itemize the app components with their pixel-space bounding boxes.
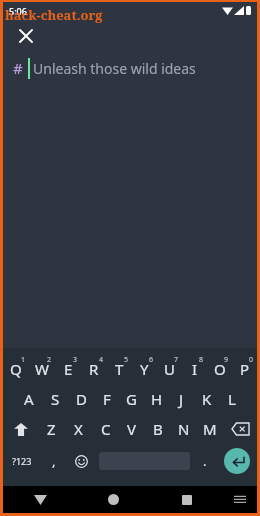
button[interactable]: Recents xyxy=(150,486,223,513)
button[interactable]: O xyxy=(207,354,232,384)
button[interactable]: Q xyxy=(3,354,29,384)
button[interactable]: U xyxy=(157,354,182,384)
staticText: G xyxy=(126,389,137,409)
button[interactable]: C xyxy=(92,414,119,444)
staticText: X xyxy=(74,419,83,439)
button[interactable]: D xyxy=(68,384,94,414)
button[interactable]: X xyxy=(65,414,92,444)
button[interactable]: P xyxy=(232,354,257,384)
button[interactable]: # xyxy=(3,53,257,83)
staticText: A xyxy=(24,389,34,409)
staticText: S xyxy=(51,389,60,409)
staticText: # xyxy=(13,58,23,78)
button[interactable]: Y xyxy=(132,354,157,384)
staticText: C xyxy=(101,419,111,439)
button[interactable]: L xyxy=(219,384,244,414)
staticText: 1 xyxy=(21,355,26,365)
staticText: V xyxy=(127,419,137,439)
staticText: F xyxy=(103,389,111,409)
staticText: 9 xyxy=(224,355,229,365)
staticText: . xyxy=(203,452,207,470)
staticText: Q xyxy=(10,359,22,379)
staticText: M xyxy=(203,419,217,439)
button[interactable]: M xyxy=(197,414,223,444)
button[interactable]: J xyxy=(169,384,194,414)
button[interactable]: K xyxy=(194,384,219,414)
staticText: N xyxy=(178,419,190,439)
staticText: 5 xyxy=(124,355,129,365)
staticText: 4 xyxy=(99,355,104,365)
staticText: H xyxy=(151,389,163,409)
button[interactable]: Home xyxy=(77,486,150,513)
staticText: 5:06 xyxy=(9,5,27,17)
button[interactable]: , xyxy=(41,444,66,478)
button[interactable]: F xyxy=(94,384,119,414)
button[interactable]: Back xyxy=(3,486,77,513)
button[interactable]: E xyxy=(55,354,81,384)
button[interactable]: Emoji xyxy=(66,444,96,478)
staticText: 8 xyxy=(199,355,204,365)
button[interactable]: T xyxy=(107,354,132,384)
staticText: L xyxy=(228,389,236,409)
staticText: J xyxy=(179,389,184,409)
staticText: hack-cheat.org xyxy=(5,6,103,24)
staticText: B xyxy=(153,419,163,439)
staticText: T xyxy=(115,359,124,379)
staticText: K xyxy=(202,389,212,409)
staticText: 6 xyxy=(149,355,154,365)
staticText: O xyxy=(214,359,226,379)
staticText: P xyxy=(240,359,250,379)
button[interactable]: ?123 xyxy=(3,444,41,478)
button[interactable]: Backspace xyxy=(223,414,257,444)
button[interactable]: I xyxy=(182,354,207,384)
staticText: Unleash those wild ideas xyxy=(33,59,196,78)
button[interactable]: H xyxy=(144,384,169,414)
button[interactable]: S xyxy=(42,384,68,414)
staticText: E xyxy=(64,359,73,379)
staticText: , xyxy=(52,452,56,470)
staticText: ?123 xyxy=(12,455,32,467)
button[interactable]: Z xyxy=(38,414,65,444)
button[interactable]: Shift xyxy=(3,414,38,444)
button[interactable]: G xyxy=(119,384,144,414)
staticText: U xyxy=(164,359,175,379)
button[interactable]: Switch keyboard xyxy=(223,486,257,513)
staticText: R xyxy=(89,359,99,379)
button[interactable]: R xyxy=(81,354,107,384)
staticText: 0 xyxy=(249,355,254,365)
staticText: Y xyxy=(140,359,149,379)
button[interactable]: V xyxy=(119,414,145,444)
button[interactable]: Enter xyxy=(224,448,250,474)
staticText: 7 xyxy=(174,355,179,365)
staticText: 2 xyxy=(47,355,52,365)
button[interactable]: N xyxy=(171,414,197,444)
button[interactable]: . xyxy=(193,444,217,478)
button[interactable]: A xyxy=(16,384,42,414)
staticText: 3 xyxy=(73,355,78,365)
button[interactable]: Close xyxy=(13,23,39,49)
staticText: D xyxy=(76,389,87,409)
staticText: W xyxy=(35,359,49,379)
staticText: I xyxy=(192,359,198,379)
button[interactable]: B xyxy=(145,414,171,444)
staticText: Z xyxy=(47,419,56,439)
button[interactable]: W xyxy=(29,354,55,384)
